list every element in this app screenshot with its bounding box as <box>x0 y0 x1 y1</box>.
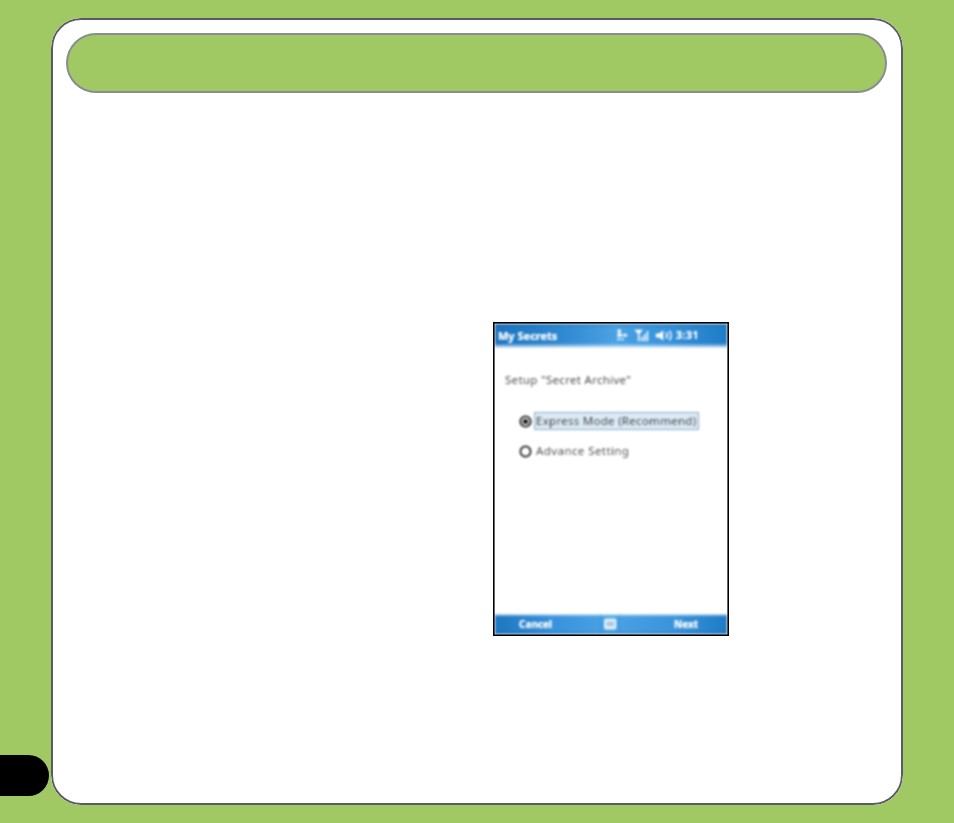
staticText: 3:31 <box>676 328 699 342</box>
staticText: Setup "Secret Archive" <box>505 372 632 388</box>
button[interactable]: Cancel <box>495 615 563 633</box>
staticText: Express Mode (Recommend) <box>536 413 697 429</box>
button[interactable]: Next <box>664 615 727 633</box>
button[interactable]: Keyboard <box>600 614 620 634</box>
staticText: My Secrets <box>498 328 558 343</box>
staticText: Advance Setting <box>536 443 630 459</box>
button[interactable]: Advance Setting <box>519 443 630 459</box>
button[interactable]: Express Mode (Recommend) <box>519 412 699 430</box>
